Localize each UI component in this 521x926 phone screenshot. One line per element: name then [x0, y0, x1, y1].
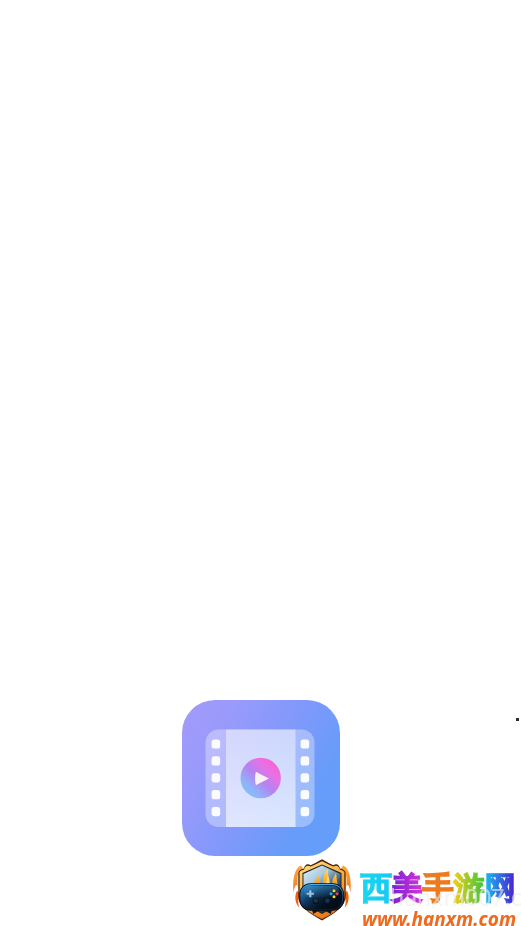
staticText: www.hanxm.com [362, 906, 517, 926]
staticText: 网 [484, 869, 515, 908]
staticText: 美 [391, 869, 422, 908]
button[interactable]: Video player app icon [182, 700, 340, 856]
staticText: 手 [422, 869, 453, 908]
staticText: 西 [360, 869, 391, 908]
staticText: 游 [453, 869, 484, 908]
staticText: hanxm007.com [390, 881, 521, 912]
